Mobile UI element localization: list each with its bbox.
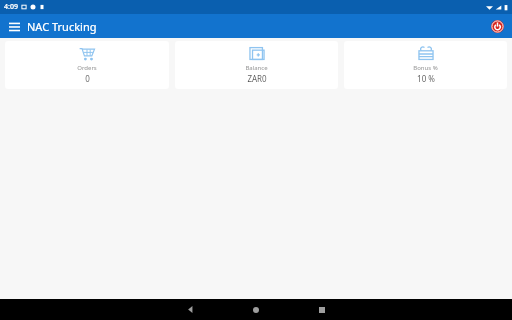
staticText: Balance: [245, 64, 268, 72]
button[interactable]: Orders: [5, 41, 169, 89]
button[interactable]: Home: [234, 299, 278, 320]
button[interactable]: Log out: [487, 16, 507, 36]
staticText: 10 %: [417, 73, 435, 84]
button[interactable]: Balance: [175, 41, 338, 89]
staticText: NAC Trucking: [27, 19, 97, 34]
staticText: 4:09: [4, 2, 18, 12]
button[interactable]: Back: [168, 299, 212, 320]
staticText: Orders: [77, 64, 97, 72]
staticText: ZAR0: [247, 73, 267, 84]
button[interactable]: Open navigation menu: [5, 17, 23, 35]
staticText: 0: [85, 73, 90, 84]
button[interactable]: Bonus %: [344, 41, 507, 89]
staticText: Bonus %: [413, 64, 438, 72]
button[interactable]: Recent apps: [300, 299, 344, 320]
